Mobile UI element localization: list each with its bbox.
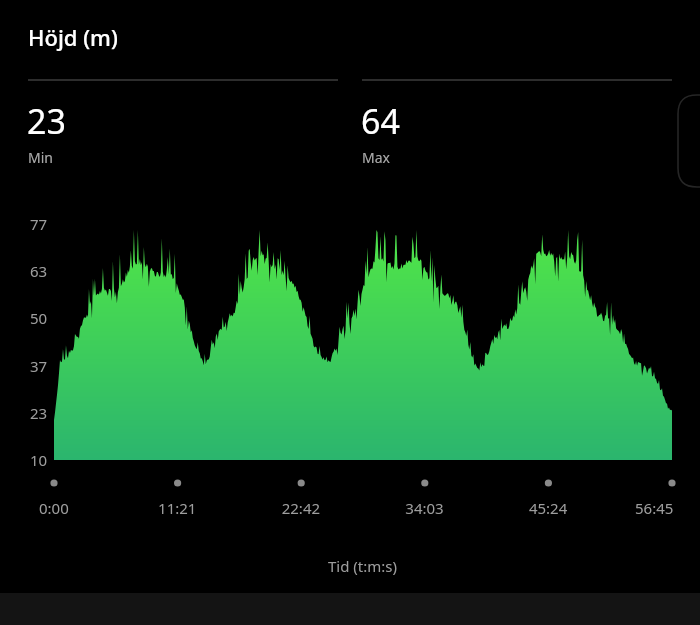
button[interactable]: Elevation chart, Höjd in metres	[0, 0, 700, 625]
